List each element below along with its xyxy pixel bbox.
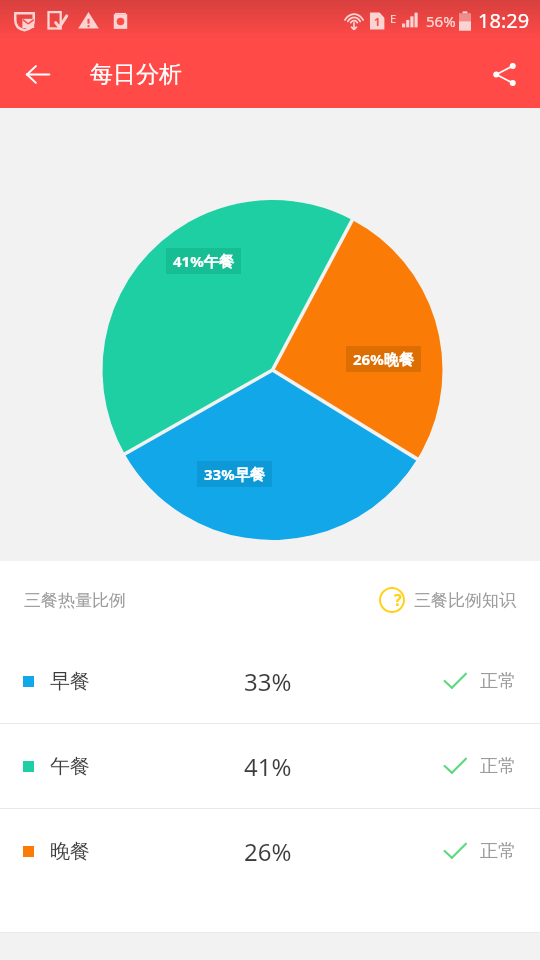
staticText: ? bbox=[394, 589, 402, 611]
staticText: 午餐 bbox=[50, 754, 90, 779]
staticText: 正常 bbox=[480, 840, 516, 863]
button[interactable]: Back bbox=[14, 51, 60, 97]
button[interactable]: 三餐比例知识 bbox=[379, 587, 516, 613]
staticText: 每日分析 bbox=[90, 60, 182, 89]
staticText: 三餐比例知识 bbox=[414, 590, 516, 611]
staticText: 26% bbox=[244, 835, 292, 868]
staticText: 三餐热量比例 bbox=[24, 590, 126, 611]
button[interactable]: 早餐 bbox=[0, 639, 540, 723]
staticText: 正常 bbox=[480, 670, 516, 693]
staticText: 18:29 bbox=[478, 7, 530, 34]
staticText: 56% bbox=[426, 11, 456, 31]
staticText: 早餐 bbox=[50, 669, 90, 694]
staticText: 33%早餐 bbox=[204, 464, 265, 484]
staticText: 1 bbox=[374, 14, 381, 29]
staticText: 41% bbox=[244, 750, 292, 783]
staticText: 33% bbox=[244, 665, 292, 698]
staticText: 正常 bbox=[480, 755, 516, 778]
staticText: 26%晚餐 bbox=[353, 349, 414, 369]
button[interactable]: 午餐 bbox=[0, 724, 540, 808]
staticText: 晚餐 bbox=[50, 839, 90, 864]
staticText: 41%午餐 bbox=[173, 251, 234, 271]
button[interactable]: Share bbox=[481, 51, 527, 97]
button[interactable]: 晚餐 bbox=[0, 809, 540, 893]
staticText: E bbox=[390, 11, 397, 26]
